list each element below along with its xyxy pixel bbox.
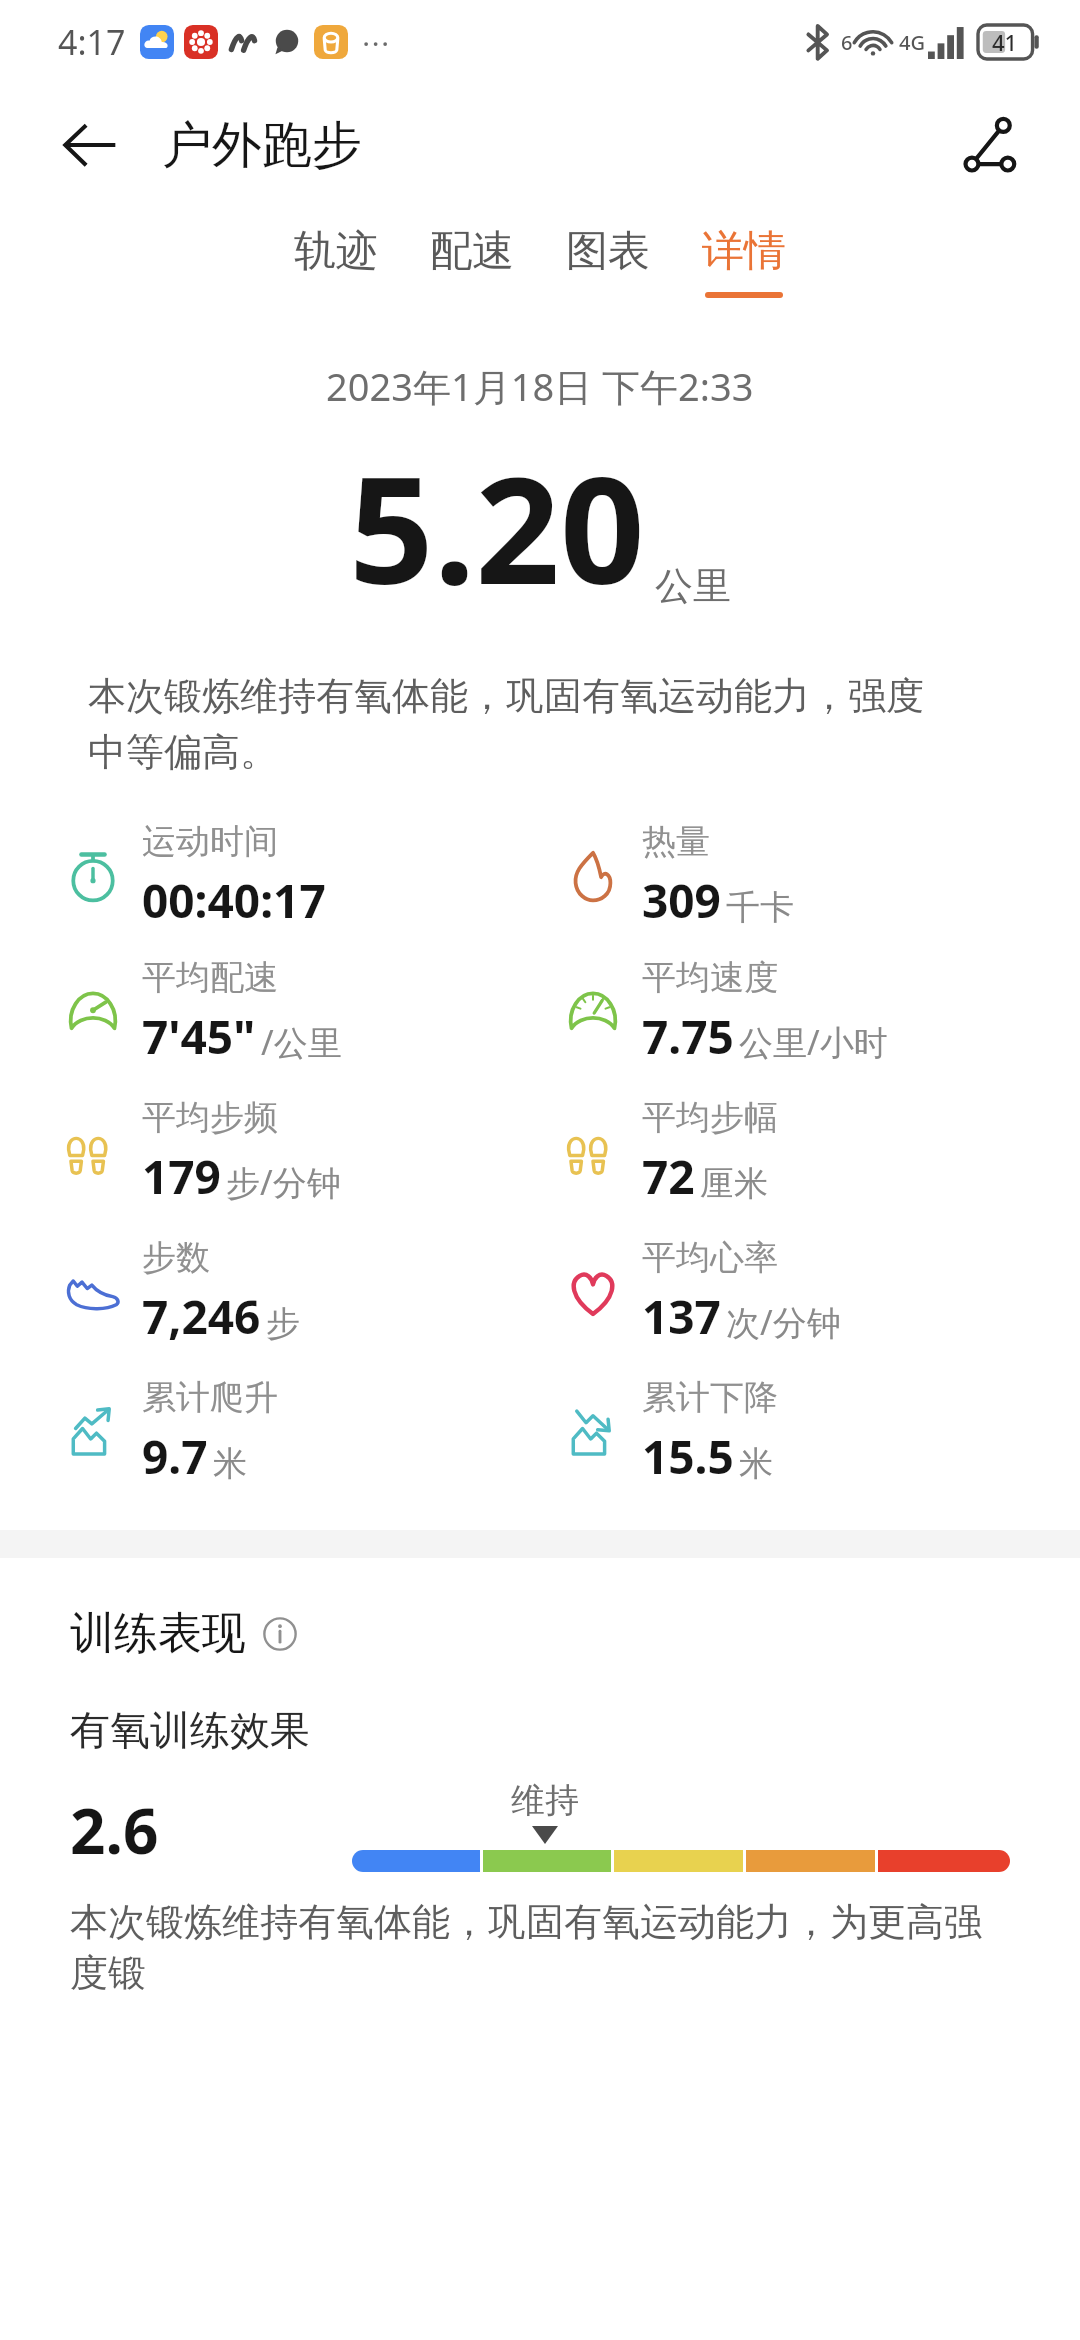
staticText: 公里: [655, 562, 731, 610]
button[interactable]: 累计下降: [540, 1362, 1080, 1502]
staticText: 训练表现: [70, 1606, 246, 1661]
staticText: 2023年1月18日 下午2:33: [326, 360, 754, 412]
button[interactable]: 热量: [540, 810, 1080, 942]
button[interactable]: 轨迹: [268, 217, 404, 306]
staticText: 米: [739, 1442, 773, 1485]
staticText: 2.6: [70, 1788, 159, 1872]
staticText: 平均速度: [642, 956, 778, 999]
staticText: 309: [642, 869, 721, 932]
staticText: 平均步幅: [642, 1096, 778, 1139]
staticText: 4G: [899, 29, 925, 56]
staticText: 米: [213, 1442, 247, 1485]
staticText: /公里: [261, 1019, 342, 1065]
button[interactable]: 平均心率: [540, 1222, 1080, 1362]
button[interactable]: Back: [46, 102, 132, 188]
button[interactable]: 平均步频: [0, 1082, 540, 1222]
staticText: 15.5: [642, 1425, 734, 1488]
staticText: 累计爬升: [142, 1376, 278, 1419]
staticText: 维持: [511, 1779, 579, 1822]
staticText: 步/分钟: [226, 1159, 341, 1205]
staticText: 运动时间: [142, 820, 278, 863]
button[interactable]: Info: [260, 1614, 300, 1654]
button[interactable]: 运动时间: [0, 810, 540, 942]
button[interactable]: 累计爬升: [0, 1362, 540, 1502]
button[interactable]: 平均步幅: [540, 1082, 1080, 1222]
staticText: 平均心率: [642, 1236, 778, 1279]
staticText: 41: [992, 27, 1018, 57]
staticText: 图表: [566, 225, 650, 278]
button[interactable]: 详情: [676, 217, 812, 306]
staticText: 厘米: [700, 1162, 768, 1205]
staticText: 户外跑步: [162, 114, 362, 177]
staticText: 热量: [642, 820, 710, 863]
staticText: 7,246: [142, 1285, 261, 1348]
button[interactable]: 平均速度: [540, 942, 1080, 1082]
staticText: 步数: [142, 1236, 210, 1279]
staticText: 6: [841, 29, 853, 56]
staticText: 详情: [702, 225, 786, 278]
staticText: 本次锻炼维持有氧体能，巩固有氧运动能力，强度: [88, 672, 924, 720]
staticText: 平均配速: [142, 956, 278, 999]
staticText: 千卡: [726, 886, 794, 929]
staticText: 72: [642, 1145, 695, 1208]
staticText: 9.7: [142, 1425, 208, 1488]
staticText: 轨迹: [294, 225, 378, 278]
staticText: 次/分钟: [726, 1299, 841, 1345]
staticText: 7.75: [642, 1005, 734, 1068]
staticText: 公里/小时: [739, 1019, 888, 1065]
button[interactable]: 配速: [404, 217, 540, 306]
staticText: 步: [266, 1302, 300, 1345]
staticText: 4:17: [58, 19, 126, 65]
staticText: 137: [642, 1285, 721, 1348]
button[interactable]: 平均配速: [0, 942, 540, 1082]
button[interactable]: Share: [948, 102, 1034, 188]
staticText: 中等偏高。: [88, 728, 278, 776]
staticText: 有氧训练效果: [70, 1705, 310, 1755]
staticText: 本次锻炼维持有氧体能，巩固有氧运动能力，为更高强度锻: [70, 1898, 1010, 1998]
staticText: 平均步频: [142, 1096, 278, 1139]
staticText: 179: [142, 1145, 221, 1208]
button[interactable]: 步数: [0, 1222, 540, 1362]
staticText: 配速: [430, 225, 514, 278]
button[interactable]: 图表: [540, 217, 676, 306]
staticText: 5.20: [349, 426, 645, 628]
staticText: 7'45": [142, 1005, 256, 1068]
staticText: 累计下降: [642, 1376, 778, 1419]
staticText: 00:40:17: [142, 869, 326, 932]
